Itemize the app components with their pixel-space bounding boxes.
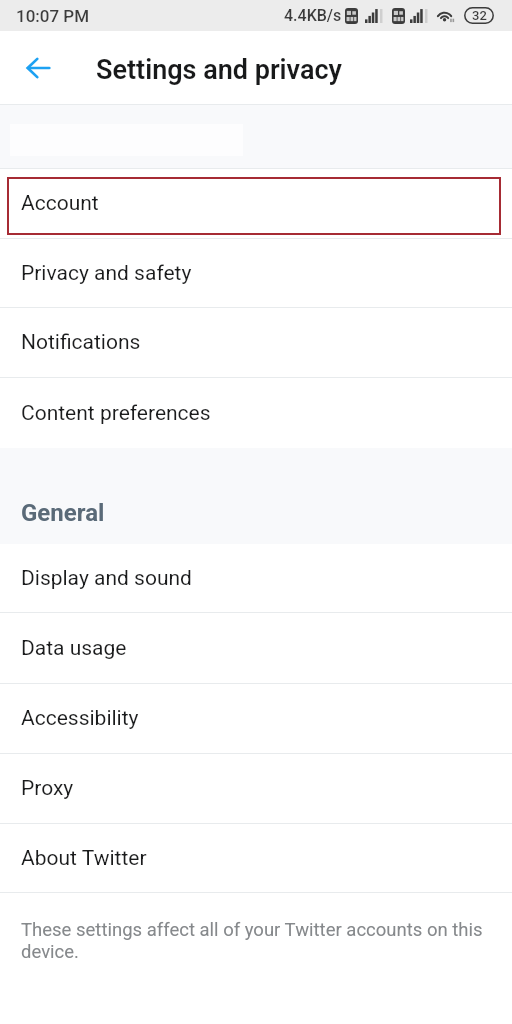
button[interactable]: Back: [14, 44, 62, 92]
staticText: Privacy and safety: [21, 261, 192, 286]
button[interactable]: Privacy and safety: [0, 239, 512, 307]
staticText: These settings affect all of your Twitte…: [21, 919, 492, 963]
button[interactable]: Account: [0, 169, 512, 238]
staticText: Accessibility: [21, 706, 139, 731]
staticText: Display and sound: [21, 566, 192, 591]
staticText: Proxy: [21, 776, 74, 801]
button[interactable]: Data usage: [0, 613, 512, 683]
button[interactable]: Display and sound: [0, 544, 512, 612]
staticText: Data usage: [21, 636, 127, 661]
staticText: 32: [472, 8, 487, 23]
staticText: Content preferences: [21, 401, 211, 426]
button[interactable]: Accessibility: [0, 684, 512, 753]
button[interactable]: Content preferences: [0, 378, 512, 448]
button[interactable]: Proxy: [0, 754, 512, 823]
button[interactable]: Notifications: [0, 308, 512, 377]
staticText: Notifications: [21, 330, 141, 355]
staticText: 4.4KB/s: [284, 6, 342, 25]
staticText: Settings and privacy: [96, 54, 342, 86]
staticText: About Twitter: [21, 846, 147, 871]
staticText: 10:07 PM: [16, 6, 90, 26]
button[interactable]: About Twitter: [0, 824, 512, 892]
staticText: Account: [21, 191, 99, 216]
staticText: General: [21, 499, 105, 527]
